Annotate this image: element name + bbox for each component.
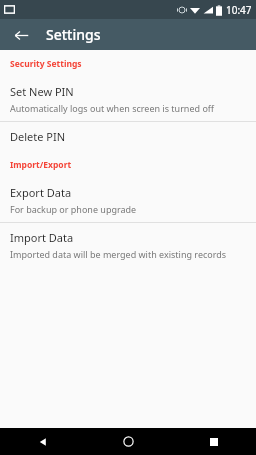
staticText: Settings: [46, 25, 101, 44]
staticText: For backup or phone upgrade: [10, 203, 137, 215]
button[interactable]: Import Data: [0, 223, 256, 267]
button[interactable]: Export Data: [0, 178, 256, 222]
staticText: 10:47: [226, 3, 252, 17]
staticText: Export Data: [10, 185, 72, 200]
staticText: Set New PIN: [10, 84, 74, 99]
button[interactable]: Home: [86, 428, 171, 455]
button[interactable]: Set New PIN: [0, 77, 256, 121]
button[interactable]: Recent apps: [171, 428, 256, 455]
button[interactable]: Delete PIN: [0, 122, 256, 151]
staticText: Delete PIN: [10, 129, 66, 144]
staticText: Import Data: [10, 230, 74, 245]
staticText: Imported data will be merged with existi…: [10, 248, 227, 260]
staticText: Security Settings: [10, 58, 82, 70]
button[interactable]: Back: [0, 428, 86, 455]
button[interactable]: Back: [8, 22, 34, 48]
staticText: Automatically logs out when screen is tu…: [10, 102, 215, 114]
staticText: Import/Export: [10, 159, 72, 171]
